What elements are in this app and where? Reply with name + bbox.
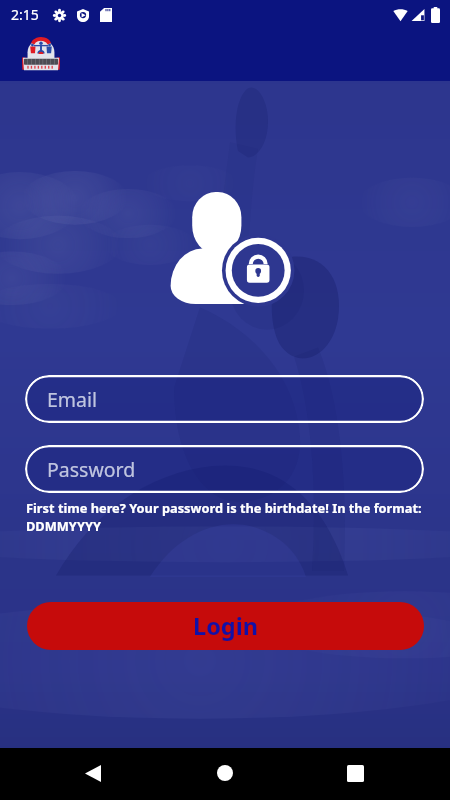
staticText: Password xyxy=(47,456,136,483)
staticText: Login xyxy=(193,610,258,642)
button[interactable]: Password xyxy=(25,445,424,493)
staticText: 2:15 xyxy=(11,5,39,24)
button[interactable]: Home xyxy=(203,752,247,794)
button[interactable]: Recent apps xyxy=(333,752,377,794)
button[interactable]: Back xyxy=(71,752,115,794)
button[interactable]: Login xyxy=(27,602,424,650)
button[interactable]: Champions Academia logo xyxy=(17,33,65,77)
staticText: First time here? Your password is the bi… xyxy=(26,499,422,535)
staticText: Email xyxy=(47,386,98,413)
button[interactable]: Email xyxy=(25,375,424,423)
